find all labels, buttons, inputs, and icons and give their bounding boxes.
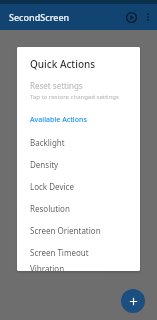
staticText: Resolution: [30, 203, 70, 214]
button[interactable]: Screen Timeout: [17, 241, 140, 263]
staticText: Tap to restore changed settings: [30, 93, 119, 101]
button[interactable]: Resolution: [17, 197, 140, 219]
button[interactable]: More options: [141, 10, 155, 24]
staticText: Backlight: [30, 137, 65, 148]
staticText: SecondScreen: [9, 11, 70, 23]
staticText: Available Actions: [30, 115, 87, 125]
staticText: Density: [30, 159, 59, 170]
button[interactable]: Run profile: [123, 9, 139, 25]
button[interactable]: Density: [17, 153, 140, 175]
button[interactable]: Add profile: [121, 289, 145, 313]
staticText: Screen Orientation: [30, 225, 101, 236]
staticText: Quick Actions: [30, 57, 96, 71]
staticText: Lock Device: [30, 181, 74, 192]
button[interactable]: Lock Device: [17, 175, 140, 197]
button[interactable]: Screen Orientation: [17, 219, 140, 241]
staticText: Screen Timeout: [30, 247, 89, 258]
button[interactable]: Backlight: [17, 131, 140, 153]
button[interactable]: Reset settings: [17, 71, 140, 103]
staticText: Reset settings: [30, 80, 83, 91]
button[interactable]: Vibration: [17, 263, 140, 271]
staticText: Vibration: [30, 263, 65, 271]
